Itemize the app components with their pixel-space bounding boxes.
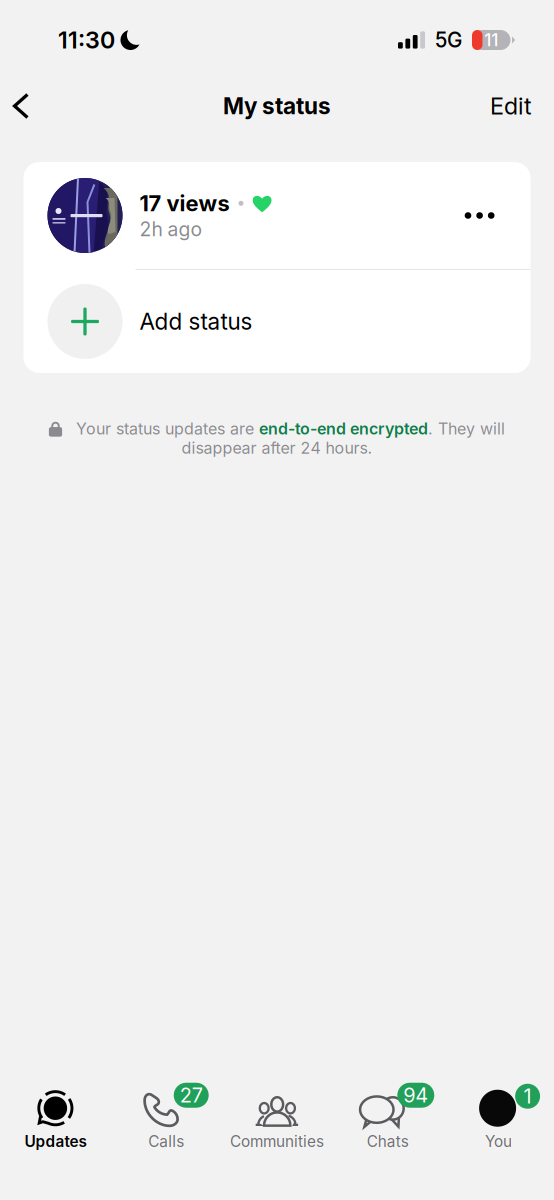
staticText: 11	[484, 29, 498, 50]
staticText: My status	[223, 92, 331, 120]
button[interactable]: Updates	[0, 1086, 111, 1152]
staticText: end-to-end encrypted	[259, 419, 428, 438]
button[interactable]: 27	[111, 1086, 222, 1152]
button[interactable]: 1	[443, 1086, 554, 1152]
button[interactable]: Communities	[222, 1086, 332, 1152]
button[interactable]: Edit	[472, 82, 532, 130]
staticText: Communities	[230, 1132, 324, 1151]
staticText: Chats	[367, 1132, 409, 1151]
staticText: Calls	[148, 1132, 184, 1151]
button[interactable]: Back	[0, 82, 42, 130]
staticText: Updates	[24, 1132, 86, 1151]
staticText: 5G	[435, 27, 462, 52]
staticText: disappear after 24 hours.	[181, 438, 372, 458]
button[interactable]: 94	[332, 1086, 443, 1152]
staticText: 17 views	[139, 190, 229, 217]
staticText: Edit	[490, 92, 532, 120]
staticText: 27	[180, 1083, 203, 1107]
staticText: You	[485, 1132, 512, 1151]
staticText: 2h ago	[139, 218, 202, 241]
staticText: 11:30	[58, 26, 115, 54]
staticText: . They will	[428, 419, 505, 438]
staticText: 94	[403, 1083, 428, 1107]
staticText: Add status	[139, 308, 252, 335]
staticText: Your status updates are	[76, 419, 259, 438]
button[interactable]: Add status	[23, 270, 530, 373]
button[interactable]: 17 views	[23, 162, 530, 269]
staticText: 1	[524, 1084, 532, 1108]
